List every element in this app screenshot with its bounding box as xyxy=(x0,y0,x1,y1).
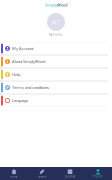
staticText: AT xyxy=(52,18,60,26)
button[interactable]: Language xyxy=(0,94,108,106)
staticText: Terms and conditions xyxy=(12,85,49,90)
staticText: Help xyxy=(12,72,20,77)
staticText: My Account xyxy=(12,46,33,51)
staticText: Journal xyxy=(65,175,75,178)
button[interactable]: Help xyxy=(0,68,108,80)
staticText: About SimplyWeed xyxy=(12,59,45,64)
button[interactable]: My Account xyxy=(0,42,108,54)
staticText: Simply xyxy=(45,2,57,8)
staticText: Strains xyxy=(38,175,46,178)
staticText: Language xyxy=(12,98,28,103)
button[interactable]: Journal xyxy=(56,167,84,180)
staticText: Profile xyxy=(93,175,103,178)
button[interactable]: Terms and conditions xyxy=(0,81,108,93)
staticText: My Profile xyxy=(49,33,63,36)
button[interactable]: Home xyxy=(0,167,28,180)
button[interactable]: Profile xyxy=(84,167,112,180)
staticText: Weed xyxy=(57,2,67,8)
staticText: Home xyxy=(10,175,18,178)
button[interactable]: Strains xyxy=(28,167,56,180)
button[interactable]: About SimplyWeed xyxy=(0,55,108,67)
